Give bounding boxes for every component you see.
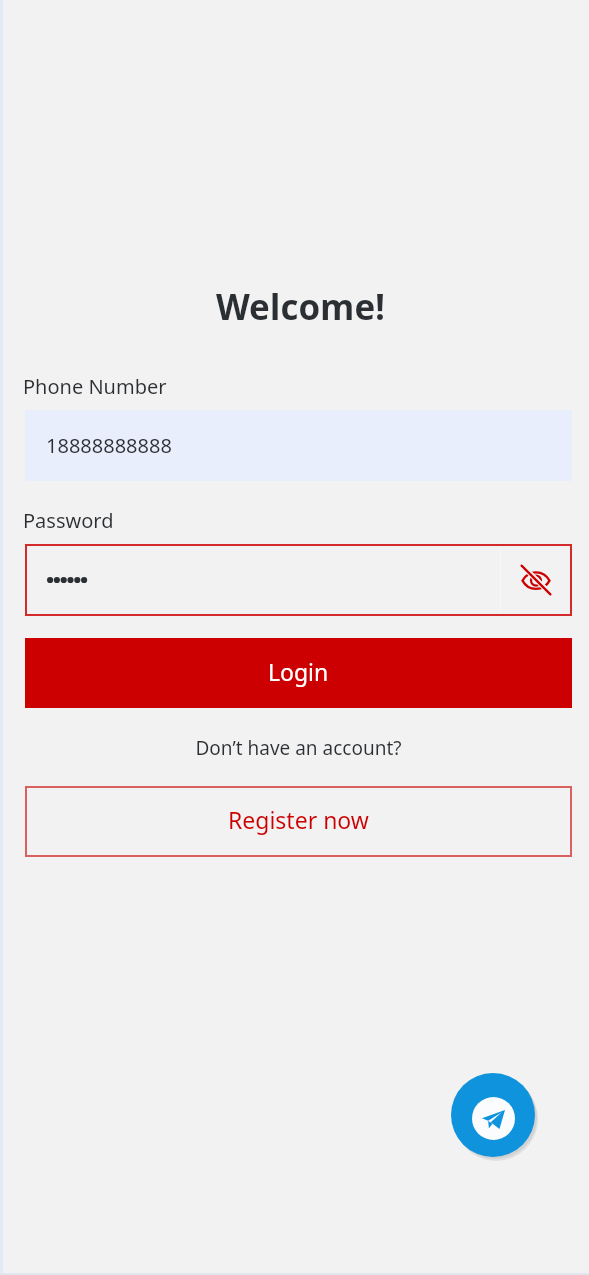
button[interactable]: Register now	[25, 786, 572, 857]
staticText: Welcome!	[27, 283, 574, 331]
staticText: Login	[268, 656, 329, 687]
staticText: Don’t have an account?	[25, 735, 572, 761]
staticText: 18888888888	[46, 432, 172, 459]
staticText: Register now	[228, 804, 369, 835]
button[interactable]: Contact us on Telegram	[451, 1073, 535, 1157]
button[interactable]: 18888888888	[25, 410, 572, 481]
button[interactable]: Hide password	[500, 544, 572, 616]
staticText: Password	[23, 507, 114, 534]
button[interactable]: Login	[25, 638, 572, 708]
staticText: Phone Number	[23, 373, 167, 400]
